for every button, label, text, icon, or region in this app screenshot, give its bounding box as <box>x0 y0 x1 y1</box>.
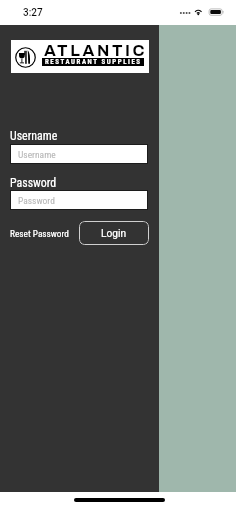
staticText: RESTAURANT SUPPLIES <box>45 58 142 66</box>
staticText: Password <box>18 195 55 206</box>
button[interactable]: Login <box>79 221 149 245</box>
staticText: Login <box>101 228 127 240</box>
staticText: Password <box>10 176 57 190</box>
button[interactable]: Password <box>10 190 148 210</box>
button[interactable]: Reset Password <box>10 226 69 241</box>
staticText: Username <box>10 129 58 143</box>
staticText: Username <box>18 149 56 160</box>
button[interactable]: Username <box>10 144 148 164</box>
staticText: ATLANTIC <box>44 42 148 60</box>
staticText: Reset Password <box>10 228 69 239</box>
staticText: 3:27 <box>23 7 43 19</box>
